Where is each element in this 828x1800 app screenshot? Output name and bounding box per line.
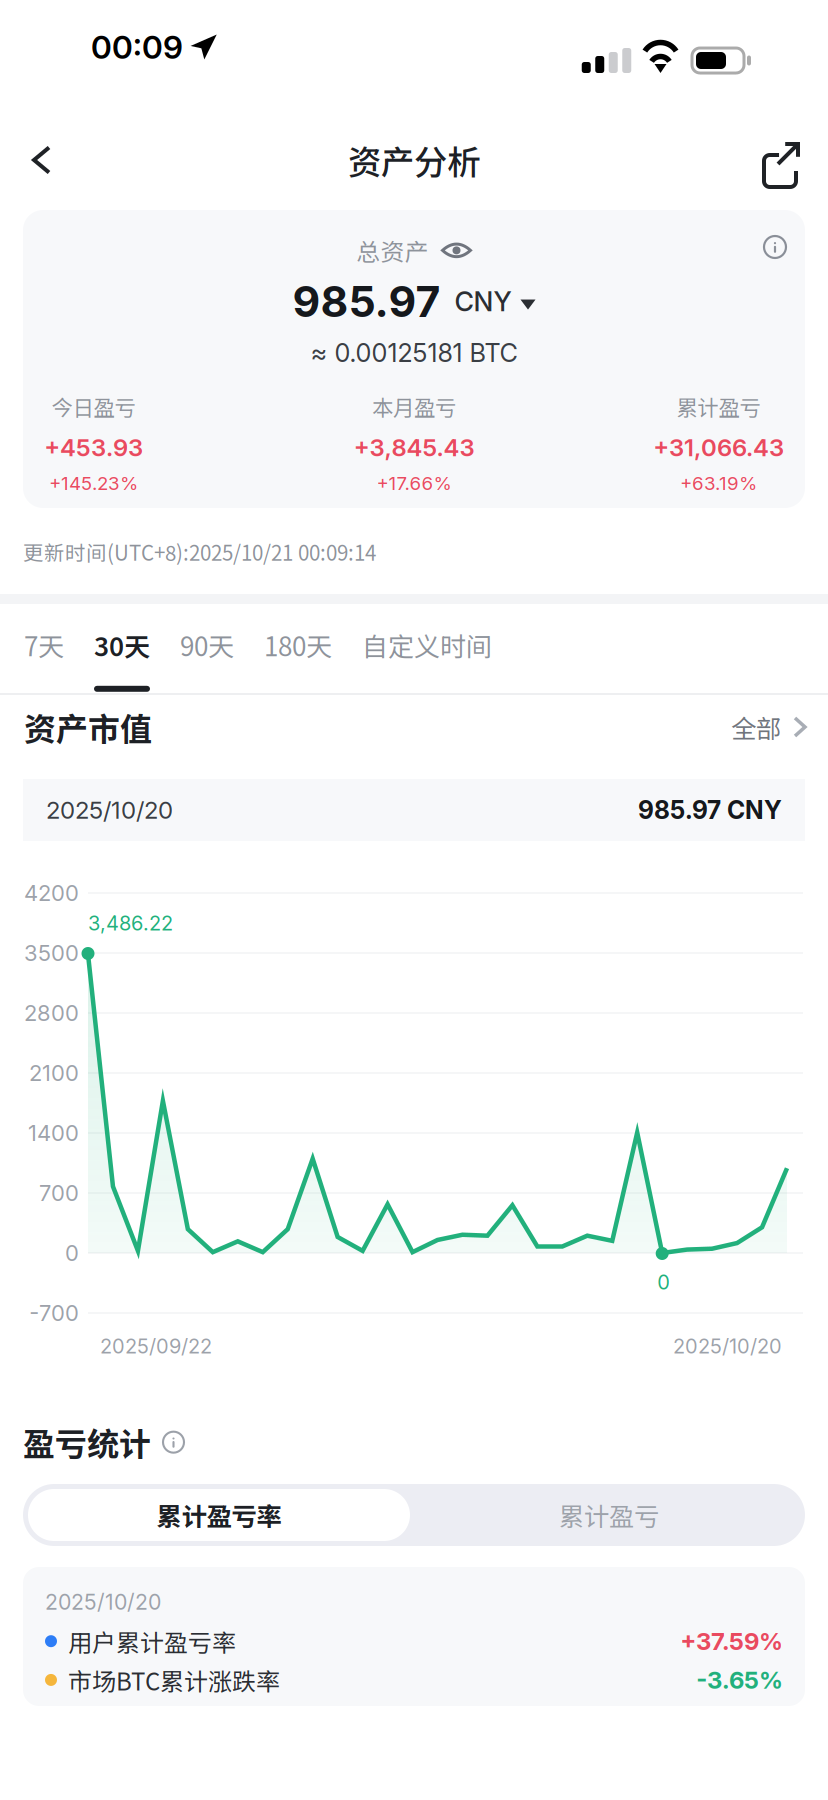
staticText: 3,486.22 xyxy=(88,911,173,935)
staticText: CNY xyxy=(454,285,511,318)
staticText: 7天 xyxy=(24,626,64,664)
staticText: 资产分析 xyxy=(348,136,480,184)
staticText: 180天 xyxy=(264,626,332,664)
button[interactable]: Toggle balance visibility xyxy=(441,238,471,262)
button[interactable]: Share xyxy=(733,114,828,205)
staticText: 市场BTC累计涨跌率 xyxy=(68,1663,280,1697)
button[interactable]: 180天 xyxy=(249,606,347,692)
staticText: +145.23% xyxy=(49,472,138,494)
button[interactable]: 全部 xyxy=(731,701,805,753)
staticText: 本月盈亏 xyxy=(372,391,456,422)
staticText: 盈亏统计 xyxy=(23,1419,151,1465)
staticText: 2025/10/20 xyxy=(46,795,173,824)
staticText: 用户累计盈亏率 xyxy=(68,1624,236,1659)
staticText: 累计盈亏 xyxy=(559,1497,659,1533)
button[interactable]: 90天 xyxy=(165,606,249,692)
staticText: 累计盈亏 xyxy=(676,391,760,422)
staticText: 全部 xyxy=(731,709,781,745)
button[interactable]: Info xyxy=(748,220,802,274)
button[interactable]: CNY xyxy=(454,285,535,318)
staticText: 0 xyxy=(657,1270,670,1294)
button[interactable]: 累计盈亏率 xyxy=(28,1489,410,1541)
staticText: 1400 xyxy=(28,1120,79,1146)
staticText: +63.19% xyxy=(680,472,757,494)
staticText: 更新时间(UTC+8):2025/10/21 00:09:14 xyxy=(23,537,376,567)
staticText: 资产市值 xyxy=(24,704,152,750)
staticText: +31,066.43 xyxy=(653,433,784,462)
staticText: 今日盈亏 xyxy=(51,391,135,422)
staticText: 2025/10/20 xyxy=(673,1334,782,1358)
button[interactable]: 自定义时间 xyxy=(347,606,507,692)
button[interactable]: 累计盈亏 xyxy=(418,1489,800,1541)
staticText: +3,845.43 xyxy=(353,433,474,462)
button[interactable]: 7天 xyxy=(9,606,79,692)
staticText: 累计盈亏率 xyxy=(156,1497,281,1533)
staticText: 00:09 xyxy=(91,28,183,66)
staticText: 90天 xyxy=(180,626,234,664)
staticText: +453.93 xyxy=(44,433,143,462)
staticText: 30天 xyxy=(94,626,150,664)
staticText: 2800 xyxy=(24,1000,79,1026)
staticText: 0 xyxy=(65,1240,79,1266)
staticText: 985.97 xyxy=(292,276,440,327)
staticText: 总资产 xyxy=(356,233,428,268)
staticText: 自定义时间 xyxy=(362,626,492,664)
staticText: -700 xyxy=(29,1300,79,1326)
staticText: 4200 xyxy=(24,880,79,906)
staticText: 700 xyxy=(39,1180,79,1206)
staticText: 2025/09/22 xyxy=(100,1334,212,1358)
staticText: +17.66% xyxy=(376,472,451,494)
staticText: 985.97 CNY xyxy=(638,795,782,825)
staticText: ≈ 0.00125181 BTC xyxy=(310,337,517,368)
staticText: +37.59% xyxy=(680,1627,783,1656)
staticText: 2025/10/20 xyxy=(45,1589,161,1615)
staticText: 3500 xyxy=(24,940,79,966)
staticText: 2100 xyxy=(29,1060,79,1086)
button[interactable]: Back xyxy=(0,114,86,205)
staticText: -3.65% xyxy=(696,1665,783,1694)
button[interactable]: 30天 xyxy=(79,606,165,692)
